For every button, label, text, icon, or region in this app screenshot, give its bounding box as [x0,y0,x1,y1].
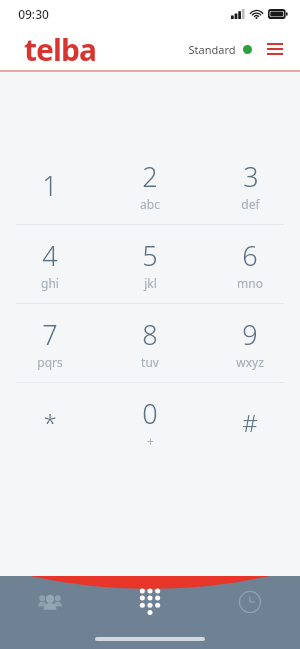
button[interactable]: Menu [262,36,288,62]
button[interactable]: Standard [188,42,252,57]
button[interactable]: 8 [100,304,200,382]
button[interactable]: 7 [0,304,100,382]
button[interactable]: Keypad [100,576,200,628]
button[interactable]: 6 [200,225,300,303]
staticText: 4 [42,237,58,274]
staticText: # [242,406,258,439]
staticText: + [147,433,154,449]
staticText: 6 [242,237,258,274]
staticText: 09:30 [18,6,49,22]
staticText: wxyz [236,354,264,370]
staticText: def [241,196,260,212]
button[interactable]: 5 [100,225,200,303]
staticText: 8 [142,316,158,353]
button[interactable]: telba [24,29,96,70]
staticText: 0 [142,395,158,432]
staticText: abc [140,196,160,212]
button[interactable]: 1 [0,146,100,224]
staticText: Standard [188,42,236,57]
staticText: 2 [142,158,158,195]
button[interactable]: # [200,383,300,461]
staticText: 3 [243,158,259,195]
staticText: 1 [42,167,58,204]
staticText: 5 [142,237,158,274]
staticText: mno [237,275,263,291]
staticText: tuv [141,354,159,370]
staticText: ghi [41,275,59,291]
button[interactable]: Recents [200,576,300,628]
button[interactable]: 9 [200,304,300,382]
staticText: 9 [242,316,258,353]
button[interactable]: 2 [100,146,200,224]
button[interactable]: 4 [0,225,100,303]
staticText: * [43,406,57,439]
staticText: 7 [42,316,58,353]
staticText: jkl [144,275,157,291]
button[interactable]: * [0,383,100,461]
button[interactable]: 0 [100,383,200,461]
button[interactable]: 3 [200,146,300,224]
button[interactable]: Contacts [0,576,100,628]
staticText: pqrs [37,354,63,370]
